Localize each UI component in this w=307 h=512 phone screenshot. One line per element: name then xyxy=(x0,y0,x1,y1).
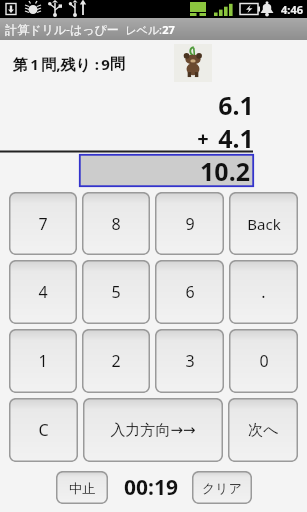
staticText: 27 xyxy=(162,22,175,37)
staticText: 入力方向→→ xyxy=(110,421,196,440)
button[interactable]: 9 xyxy=(155,192,224,255)
button[interactable]: 中止 xyxy=(56,471,108,504)
staticText: 5 xyxy=(111,281,121,303)
button[interactable]: 0 xyxy=(229,329,298,393)
staticText: 00:19 xyxy=(124,473,178,502)
button[interactable]: 6 xyxy=(155,260,224,324)
button[interactable]: 次へ xyxy=(228,398,298,462)
staticText: 10.2 xyxy=(200,154,250,187)
staticText: 1 xyxy=(38,350,48,372)
staticText: 9 xyxy=(101,54,110,74)
staticText: 8 xyxy=(111,213,121,235)
staticText: 3 xyxy=(185,350,195,372)
button[interactable]: クリア xyxy=(192,471,252,504)
staticText: C xyxy=(38,419,49,441)
staticText: 問 xyxy=(110,55,125,74)
button[interactable]: 入力方向→→ xyxy=(83,398,223,462)
button[interactable]: 1 xyxy=(9,329,77,393)
staticText: 7 xyxy=(38,213,48,235)
staticText: Back xyxy=(247,214,281,234)
staticText: 0 xyxy=(259,350,269,372)
staticText: 計算ドリル-はっぴー xyxy=(5,21,119,37)
staticText: 4 xyxy=(38,281,48,303)
button[interactable]: 8 xyxy=(82,192,150,255)
button[interactable]: 3 xyxy=(155,329,224,393)
staticText: 9 xyxy=(185,213,195,235)
button[interactable]: . xyxy=(229,260,298,324)
staticText: 中止 xyxy=(69,480,95,496)
button[interactable]: C xyxy=(9,398,78,462)
button[interactable]: 5 xyxy=(82,260,150,324)
staticText: 6.1 xyxy=(218,88,254,122)
staticText: + xyxy=(197,125,209,152)
staticText: 問,残り : xyxy=(39,54,101,74)
button[interactable]: 4 xyxy=(9,260,77,324)
staticText: 1 xyxy=(30,54,39,74)
staticText: 次へ xyxy=(248,421,279,440)
staticText: レベル: xyxy=(125,22,162,37)
button[interactable]: Back xyxy=(229,192,298,255)
staticText: 6 xyxy=(185,281,195,303)
button[interactable]: 7 xyxy=(9,192,77,255)
staticText: . xyxy=(261,281,266,303)
button[interactable]: 2 xyxy=(82,329,150,393)
staticText: 4:46 xyxy=(281,2,303,17)
staticText: 第 xyxy=(11,54,30,74)
staticText: クリア xyxy=(202,480,242,496)
staticText: 2 xyxy=(111,350,121,372)
button[interactable]: 10.2 xyxy=(79,154,254,187)
staticText: 4.1 xyxy=(218,121,254,155)
